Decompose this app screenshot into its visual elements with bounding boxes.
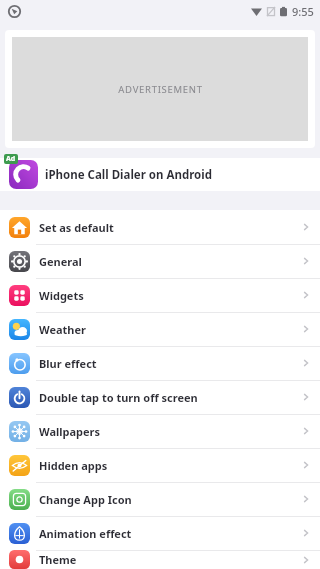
button[interactable]: General: [0, 244, 320, 278]
staticText: Wallpapers: [39, 424, 300, 439]
staticText: Change App Icon: [39, 492, 300, 507]
button[interactable]: Blur effect: [0, 346, 320, 380]
button[interactable]: Double tap to turn off screen: [0, 380, 320, 414]
staticText: Set as default: [39, 220, 300, 235]
button[interactable]: Weather: [0, 312, 320, 346]
button[interactable]: Set as default: [0, 210, 320, 244]
staticText: Hidden apps: [39, 458, 300, 473]
button[interactable]: Hidden apps: [0, 448, 320, 482]
staticText: Double tap to turn off screen: [39, 390, 300, 405]
staticText: ADVERTISEMENT: [118, 83, 203, 96]
button[interactable]: Animation effect: [0, 516, 320, 550]
staticText: Weather: [39, 322, 300, 337]
button[interactable]: Widgets: [0, 278, 320, 312]
staticText: Ad: [6, 154, 16, 164]
staticText: 9:55: [292, 4, 314, 19]
button[interactable]: Wallpapers: [0, 414, 320, 448]
staticText: Widgets: [39, 288, 300, 303]
button[interactable]: Advertisement banner: [5, 30, 315, 148]
staticText: Blur effect: [39, 356, 300, 371]
staticText: iPhone Call Dialer on Android: [45, 167, 213, 183]
button[interactable]: Change App Icon: [0, 482, 320, 516]
staticText: Theme: [39, 552, 300, 567]
button[interactable]: Theme: [0, 550, 320, 569]
button[interactable]: iPhone Call Dialer on Android: [0, 158, 320, 191]
staticText: Animation effect: [39, 526, 300, 541]
staticText: General: [39, 254, 300, 269]
